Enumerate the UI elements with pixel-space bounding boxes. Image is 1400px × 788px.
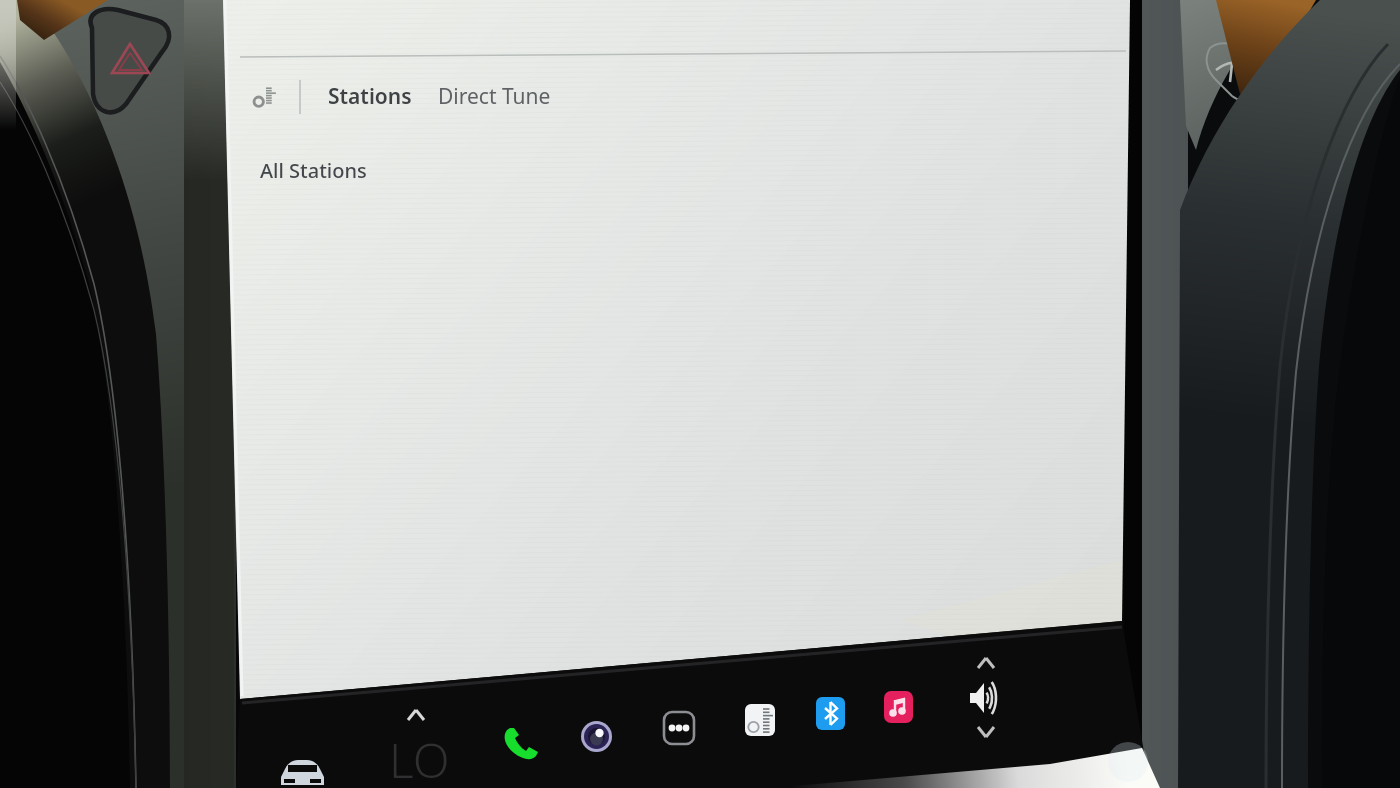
button[interactable]: Driver temperature <box>388 700 450 780</box>
button[interactable]: Volume <box>958 676 1016 726</box>
button[interactable]: Radio <box>732 692 784 744</box>
button[interactable]: Media <box>872 680 924 732</box>
button[interactable]: Car controls <box>272 742 322 788</box>
button[interactable]: Volume down <box>958 720 1016 758</box>
button[interactable]: Camera <box>570 706 622 758</box>
staticText: LO <box>389 727 450 788</box>
button[interactable]: More apps <box>652 700 704 752</box>
staticText: Stations <box>328 82 412 111</box>
button[interactable]: Bluetooth audio <box>802 686 854 738</box>
button[interactable]: Direct Tune <box>438 82 551 111</box>
button[interactable]: All Stations <box>260 157 367 184</box>
staticText: Direct Tune <box>438 82 551 111</box>
button[interactable]: Volume up <box>958 646 1016 684</box>
button[interactable]: Phone <box>494 712 546 764</box>
button[interactable]: Stations <box>328 82 412 111</box>
staticText: All Stations <box>260 157 367 184</box>
button[interactable]: Radio source <box>253 83 279 111</box>
